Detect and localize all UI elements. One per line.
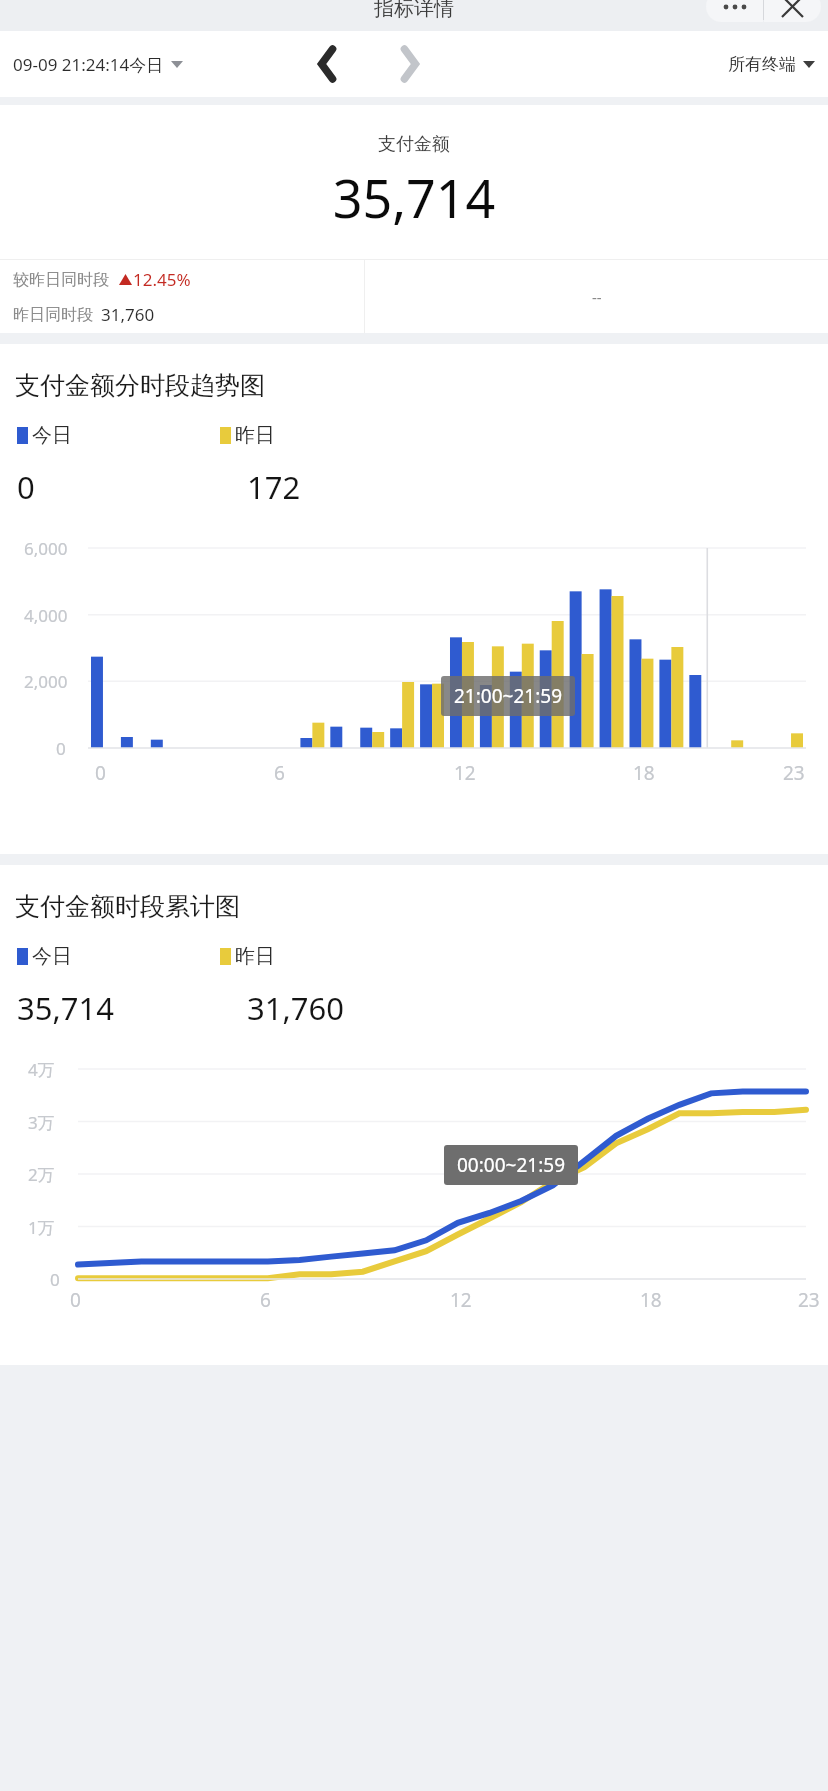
staticText: 31,760: [101, 303, 155, 326]
staticText: 3万: [28, 1111, 55, 1134]
staticText: 支付金额分时段趋势图: [15, 370, 265, 401]
staticText: 4,000: [24, 604, 68, 627]
staticText: 18: [633, 760, 655, 786]
staticText: 12: [450, 1287, 472, 1313]
staticText: 昨日: [235, 944, 275, 969]
staticText: 2,000: [24, 670, 68, 693]
staticText: 21:00~21:59: [454, 683, 562, 709]
staticText: 昨日同时段: [13, 305, 93, 325]
staticText: 00:00~21:59: [457, 1152, 565, 1178]
staticText: 09-09 21:24:14今日: [13, 53, 164, 76]
staticText: 支付金额时段累计图: [15, 891, 240, 922]
button[interactable]: Previous period: [304, 41, 350, 87]
staticText: 23: [798, 1287, 820, 1313]
staticText: 0: [56, 737, 66, 760]
staticText: 昨日: [235, 423, 275, 448]
staticText: 31,760: [247, 987, 344, 1029]
staticText: 18: [640, 1287, 662, 1313]
staticText: 35,714: [0, 162, 828, 233]
staticText: 0: [50, 1268, 60, 1291]
staticText: 2万: [28, 1163, 55, 1186]
staticText: 6: [260, 1287, 271, 1313]
staticText: 0: [95, 760, 106, 786]
staticText: --: [592, 287, 602, 307]
staticText: 今日: [32, 944, 72, 969]
button[interactable]: 所有终端: [728, 54, 815, 75]
staticText: 6,000: [24, 537, 68, 560]
staticText: 35,714: [17, 987, 114, 1029]
staticText: 指标详情: [374, 0, 454, 21]
button[interactable]: 09-09 21:24:14今日: [13, 53, 183, 76]
staticText: 172: [247, 466, 301, 508]
staticText: 所有终端: [728, 54, 796, 75]
button[interactable]: Close: [764, 0, 821, 22]
staticText: 0: [17, 466, 35, 508]
staticText: 6: [274, 760, 285, 786]
staticText: 今日: [32, 423, 72, 448]
staticText: 23: [783, 760, 805, 786]
staticText: 1万: [28, 1216, 55, 1239]
button[interactable]: More options: [706, 0, 763, 22]
staticText: 12.45%: [133, 268, 191, 291]
staticText: 支付金额: [0, 133, 828, 156]
staticText: 12: [454, 760, 476, 786]
button[interactable]: Next period: [386, 41, 432, 87]
staticText: 较昨日同时段: [13, 270, 109, 290]
staticText: 4万: [28, 1058, 55, 1081]
staticText: 0: [70, 1287, 81, 1313]
